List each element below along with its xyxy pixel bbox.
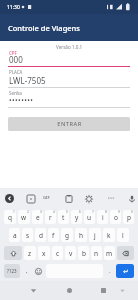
button[interactable]: o	[110, 210, 121, 224]
button[interactable]: Back	[5, 194, 14, 203]
staticText: b	[82, 249, 86, 258]
staticText: Versão 1.0.1	[56, 44, 83, 50]
button[interactable]: Enter	[116, 264, 134, 278]
staticText: 9	[118, 210, 120, 214]
button[interactable]: p	[123, 210, 134, 224]
staticText: ?123	[7, 268, 17, 274]
staticText: 8	[105, 210, 107, 214]
button[interactable]: w	[18, 210, 30, 224]
button[interactable]: ,	[21, 262, 32, 280]
staticText: 1	[13, 210, 15, 214]
staticText: k	[107, 231, 111, 240]
staticText: j	[94, 231, 96, 240]
staticText: CPF	[9, 50, 17, 56]
button[interactable]: x	[38, 246, 50, 260]
button[interactable]: t	[58, 210, 69, 224]
staticText: Controle de Viagens	[8, 23, 80, 33]
button[interactable]: c	[52, 246, 63, 260]
staticText: 000	[9, 54, 23, 65]
button[interactable]: r	[45, 210, 56, 224]
button[interactable]: .	[104, 262, 115, 280]
button[interactable]: Home	[63, 284, 76, 297]
staticText: 0	[131, 210, 133, 214]
staticText: m	[106, 249, 113, 258]
staticText: c	[56, 249, 60, 258]
button[interactable]: Hide keyboard	[27, 284, 40, 297]
button[interactable]: LWL-7505	[8, 75, 130, 87]
button[interactable]: Backspace	[117, 246, 134, 260]
staticText: .	[109, 267, 111, 275]
staticText: 4	[53, 210, 55, 214]
button[interactable]: ?123	[4, 264, 20, 278]
button[interactable]: Settings	[83, 193, 94, 204]
button[interactable]: Emoji	[32, 262, 45, 280]
staticText: PLACA	[9, 69, 23, 75]
button[interactable]: m	[104, 246, 115, 260]
button[interactable]: GIF	[41, 192, 51, 204]
staticText: x	[42, 249, 46, 258]
staticText: d	[39, 231, 43, 240]
staticText: LWL-7505	[9, 75, 46, 86]
button[interactable]: s	[22, 228, 33, 242]
staticText: a	[13, 231, 17, 240]
staticText: GIF	[43, 195, 50, 201]
staticText: 5	[66, 210, 68, 214]
button[interactable]: y	[71, 210, 82, 224]
staticText: 11:30	[7, 4, 20, 11]
staticText: ••••••••	[9, 96, 34, 106]
staticText: q	[8, 213, 12, 222]
button[interactable]: Clipboard	[63, 193, 74, 204]
button[interactable]: a	[9, 228, 20, 242]
button[interactable]: Stickers	[25, 193, 36, 204]
staticText: r	[49, 213, 52, 222]
button[interactable]: f	[48, 228, 59, 242]
button[interactable]: g	[61, 228, 73, 242]
staticText: s	[26, 231, 30, 240]
staticText: f	[52, 231, 55, 240]
button[interactable]: More	[106, 193, 116, 203]
staticText: n	[94, 249, 99, 258]
staticText: h	[79, 231, 84, 240]
button[interactable]: k	[103, 228, 115, 242]
button[interactable]: Collapse	[117, 285, 128, 296]
staticText: g	[65, 231, 69, 240]
staticText: e	[36, 213, 40, 222]
staticText: Senha	[9, 90, 22, 96]
staticText: p	[127, 213, 131, 222]
button[interactable]: h	[75, 228, 87, 242]
staticText: ,	[26, 267, 28, 275]
staticText: 6	[79, 210, 81, 214]
staticText: z	[28, 249, 32, 258]
button[interactable]: v	[65, 246, 76, 260]
button[interactable]: l	[117, 228, 129, 242]
staticText: t	[62, 213, 65, 222]
button[interactable]: q	[4, 210, 16, 224]
staticText: u	[87, 213, 92, 222]
staticText: y	[75, 213, 79, 222]
staticText: i	[102, 213, 104, 222]
staticText: v	[69, 249, 73, 258]
staticText: 3	[40, 210, 42, 214]
staticText: 7	[92, 210, 94, 214]
button[interactable]: b	[78, 246, 89, 260]
button[interactable]: j	[89, 228, 101, 242]
button[interactable]: 000	[8, 54, 130, 67]
button[interactable]: ENTRAR	[8, 117, 130, 131]
button[interactable]: e	[32, 210, 43, 224]
button[interactable]: Recent apps	[97, 284, 110, 297]
button[interactable]: z	[24, 246, 36, 260]
staticText: o	[114, 213, 118, 222]
button[interactable]: n	[91, 246, 102, 260]
staticText: 2	[27, 210, 29, 214]
staticText: w	[21, 213, 27, 222]
button[interactable]: ••••••••	[8, 96, 130, 107]
staticText: l	[122, 231, 124, 240]
button[interactable]: i	[97, 210, 108, 224]
button[interactable]: d	[35, 228, 46, 242]
button[interactable]: Shift	[4, 246, 22, 260]
button[interactable]: Voice input	[126, 193, 137, 204]
staticText: ENTRAR	[57, 120, 82, 128]
button[interactable]: u	[84, 210, 95, 224]
